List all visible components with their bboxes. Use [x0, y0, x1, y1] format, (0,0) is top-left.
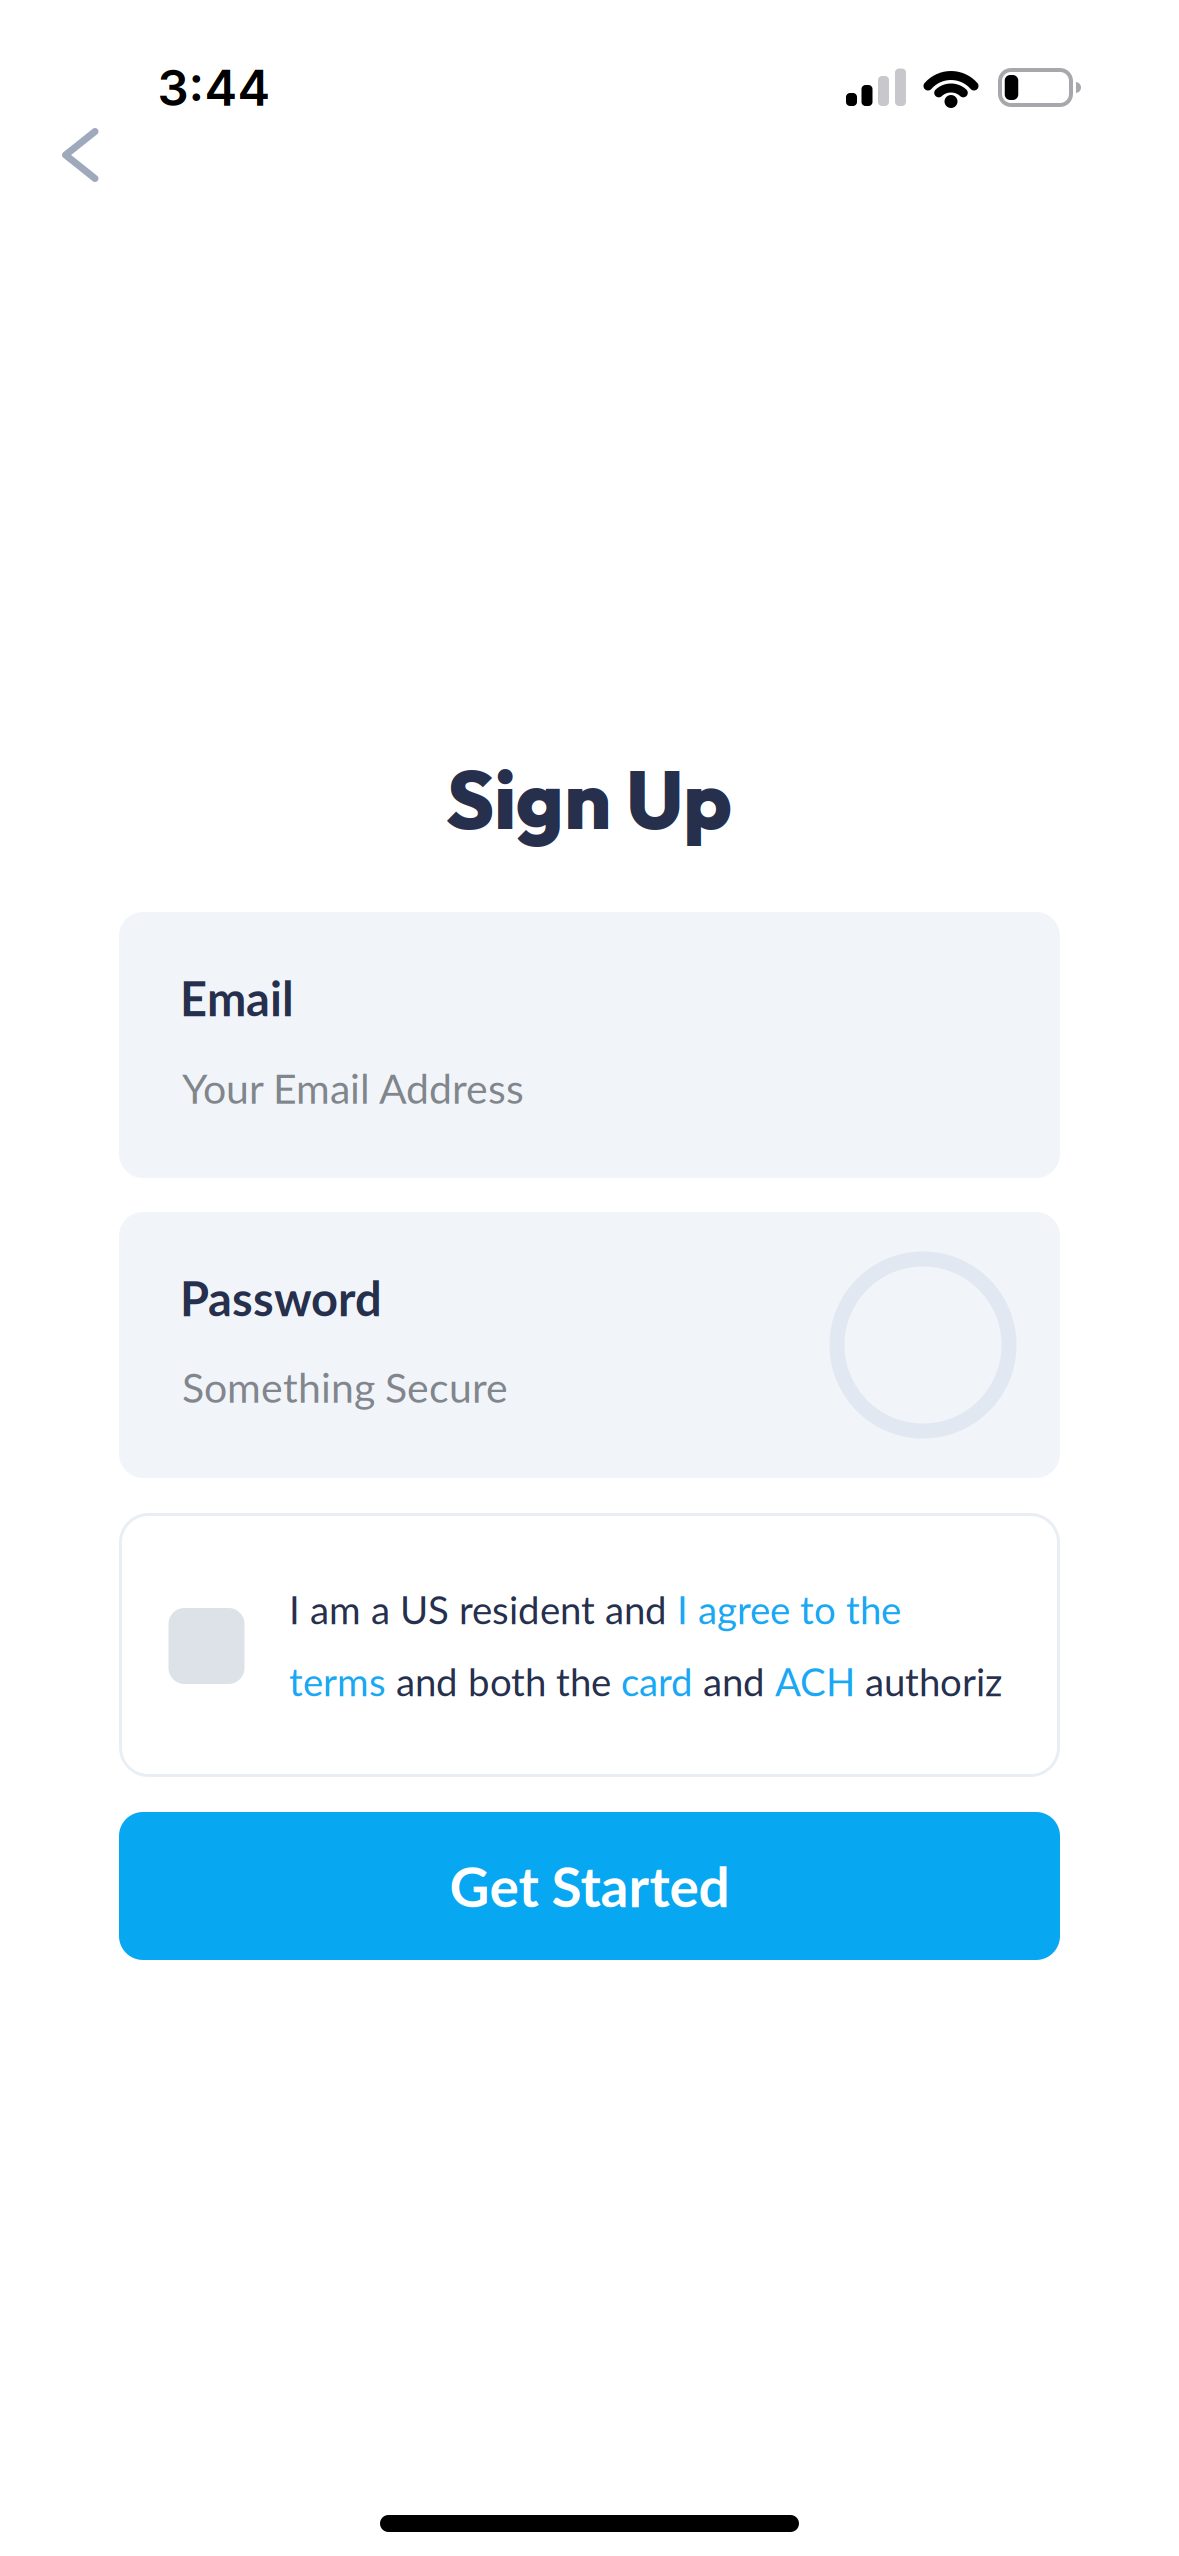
staticText: I agree to the — [677, 1586, 901, 1633]
staticText: Get Started — [449, 1853, 729, 1919]
staticText: I am a US resident and — [289, 1586, 677, 1633]
staticText: ACH — [775, 1658, 855, 1705]
staticText: Sign Up — [446, 748, 732, 850]
button[interactable]: Get Started — [119, 1812, 1060, 1960]
staticText: Something Secure — [182, 1362, 508, 1412]
staticText: Password — [180, 1270, 382, 1326]
button[interactable]: card — [621, 1658, 693, 1705]
staticText: and both the — [386, 1658, 621, 1705]
staticText: Your Email Address — [182, 1063, 524, 1113]
button[interactable]: terms — [289, 1658, 386, 1705]
staticText: terms — [289, 1658, 386, 1705]
button[interactable]: ACH — [775, 1658, 855, 1705]
staticText: and — [693, 1658, 775, 1705]
staticText: authoriz — [855, 1658, 1002, 1705]
staticText: card — [621, 1658, 693, 1705]
staticText: Email — [180, 970, 294, 1026]
staticText: 3:44 — [157, 58, 270, 118]
button[interactable]: I agree to the terms — [168, 1608, 244, 1684]
button[interactable]: Back — [62, 128, 99, 182]
button[interactable]: I agree to the — [677, 1586, 901, 1633]
